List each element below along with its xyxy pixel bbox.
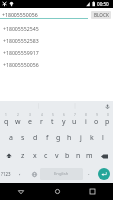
button[interactable]: English (40, 168, 83, 180)
staticText: +18005550056 (3, 61, 39, 68)
button[interactable]: d (29, 129, 41, 147)
staticText: 4 (41, 113, 43, 117)
staticText: u (72, 117, 77, 127)
staticText: t (51, 117, 54, 127)
staticText: 6 (63, 113, 65, 117)
staticText: d (33, 133, 38, 143)
staticText: 2 (17, 113, 19, 117)
button[interactable]: +18005552545 (0, 22, 113, 34)
button[interactable]: +18005552583 (0, 34, 113, 46)
staticText: BLOCK (94, 12, 109, 18)
button[interactable]: 4 (36, 111, 47, 129)
staticText: +18005550056 (2, 11, 38, 18)
staticText: . (88, 169, 90, 177)
button[interactable]: Language (28, 165, 40, 183)
button[interactable]: s (17, 129, 29, 147)
button[interactable]: z (17, 147, 29, 165)
staticText: 5 (52, 113, 54, 117)
staticText: l (102, 133, 104, 143)
button[interactable]: ?123 (0, 165, 11, 183)
staticText: w (15, 117, 21, 127)
staticText: j (80, 133, 82, 143)
staticText: z (21, 151, 25, 161)
button[interactable]: Comma (11, 165, 28, 183)
staticText: 3 (29, 113, 31, 117)
staticText: ?123 (1, 171, 11, 177)
staticText: c (44, 151, 48, 161)
staticText: b (65, 151, 70, 161)
staticText: p (105, 117, 110, 127)
button[interactable]: v (51, 147, 62, 165)
staticText: 0 (107, 113, 109, 117)
button[interactable]: h (64, 129, 75, 147)
button[interactable]: Recents (77, 183, 107, 200)
button[interactable]: +18005559917 (0, 46, 113, 58)
button[interactable]: 7 (69, 111, 80, 129)
staticText: +18005552545 (3, 25, 39, 32)
staticText: i (85, 117, 87, 127)
button[interactable]: Back (6, 183, 36, 200)
button[interactable]: 2 (12, 111, 24, 129)
button[interactable]: k (86, 129, 97, 147)
staticText: +18005559917 (3, 49, 39, 56)
staticText: a (9, 133, 13, 143)
staticText: r (40, 117, 43, 127)
staticText: e (28, 117, 32, 127)
button[interactable]: x (29, 147, 40, 165)
staticText: 8 (85, 113, 87, 117)
staticText: x (33, 151, 37, 161)
button[interactable]: Home (42, 183, 72, 200)
staticText: 00:50 (97, 1, 109, 7)
button[interactable]: g (53, 129, 64, 147)
button[interactable]: Period (83, 165, 95, 183)
button[interactable]: 3 (24, 111, 36, 129)
staticText: v (55, 151, 59, 161)
button[interactable]: a (5, 129, 17, 147)
button[interactable]: c (40, 147, 51, 165)
button[interactable]: Backspace (95, 147, 113, 165)
staticText: 7 (74, 113, 76, 117)
button[interactable]: j (75, 129, 86, 147)
staticText: f (46, 133, 49, 143)
button[interactable]: 9 (91, 111, 102, 129)
button[interactable]: 0 (102, 111, 113, 129)
button[interactable]: Voice input (101, 101, 113, 111)
button[interactable]: 8 (80, 111, 91, 129)
button[interactable]: b (62, 147, 73, 165)
button[interactable]: 1 (0, 111, 12, 129)
staticText: English (54, 171, 69, 177)
staticText: , (19, 169, 21, 177)
staticText: +18005552583 (3, 37, 39, 44)
staticText: n (76, 151, 81, 161)
staticText: o (94, 117, 99, 127)
staticText: y (62, 117, 66, 127)
button[interactable]: 5 (47, 111, 58, 129)
button[interactable]: Enter (95, 165, 113, 183)
staticText: k (90, 133, 94, 143)
button[interactable]: 6 (58, 111, 69, 129)
button[interactable]: n (73, 147, 84, 165)
staticText: 1 (5, 113, 7, 117)
staticText: m (86, 151, 93, 161)
staticText: 9 (96, 113, 98, 117)
staticText: s (21, 133, 25, 143)
staticText: h (67, 133, 72, 143)
staticText: g (56, 133, 61, 143)
button[interactable]: +18005550056 (0, 58, 113, 70)
staticText: q (4, 117, 9, 127)
button[interactable]: m (84, 147, 95, 165)
button[interactable]: f (41, 129, 53, 147)
button[interactable]: Shift (0, 147, 17, 165)
button[interactable]: BLOCK (91, 11, 111, 19)
button[interactable]: l (97, 129, 108, 147)
